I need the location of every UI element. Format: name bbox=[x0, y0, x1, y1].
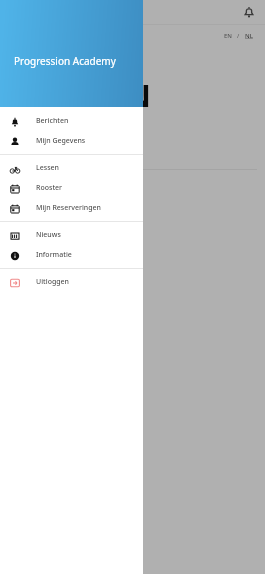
staticText: Berichten bbox=[36, 116, 69, 126]
staticText: PROGRESSION bbox=[0, 75, 151, 116]
button[interactable]: Mijn Gegevens bbox=[0, 131, 143, 151]
button[interactable]: Informatie bbox=[0, 245, 143, 265]
staticText: Mijn Gegevens bbox=[36, 136, 86, 146]
button[interactable]: Notifications bbox=[239, 2, 259, 22]
staticText: Mijn Reserveringen bbox=[36, 203, 101, 213]
staticText: Lessen bbox=[36, 163, 59, 173]
staticText: Nieuws bbox=[36, 230, 61, 240]
button[interactable]: Lessen bbox=[0, 158, 143, 178]
staticText: Informatie bbox=[36, 250, 72, 260]
staticText: NL bbox=[245, 32, 253, 40]
button[interactable]: NL bbox=[243, 32, 255, 40]
button[interactable]: Uitloggen bbox=[0, 272, 143, 292]
staticText: Rooster bbox=[36, 183, 63, 193]
button[interactable]: Berichten bbox=[0, 111, 143, 131]
button[interactable]: Mijn Reserveringen bbox=[0, 198, 143, 218]
staticText: / bbox=[237, 32, 240, 40]
staticText: EN bbox=[224, 32, 232, 40]
button[interactable]: Nieuws bbox=[0, 225, 143, 245]
staticText: ACADEMY bbox=[0, 116, 76, 151]
staticText: Uitloggen bbox=[36, 277, 69, 287]
button[interactable]: Rooster bbox=[0, 178, 143, 198]
staticText: Progression Academy bbox=[14, 54, 116, 68]
button[interactable]: EN bbox=[222, 32, 234, 40]
